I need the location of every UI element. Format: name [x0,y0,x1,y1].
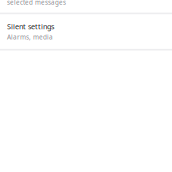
staticText: selected messages [7,0,66,6]
staticText: Silent settings [7,21,54,31]
button[interactable]: Silent settings [0,13,172,48]
staticText: Alarms, media [7,33,53,41]
button[interactable]: selected messages [0,0,172,5]
